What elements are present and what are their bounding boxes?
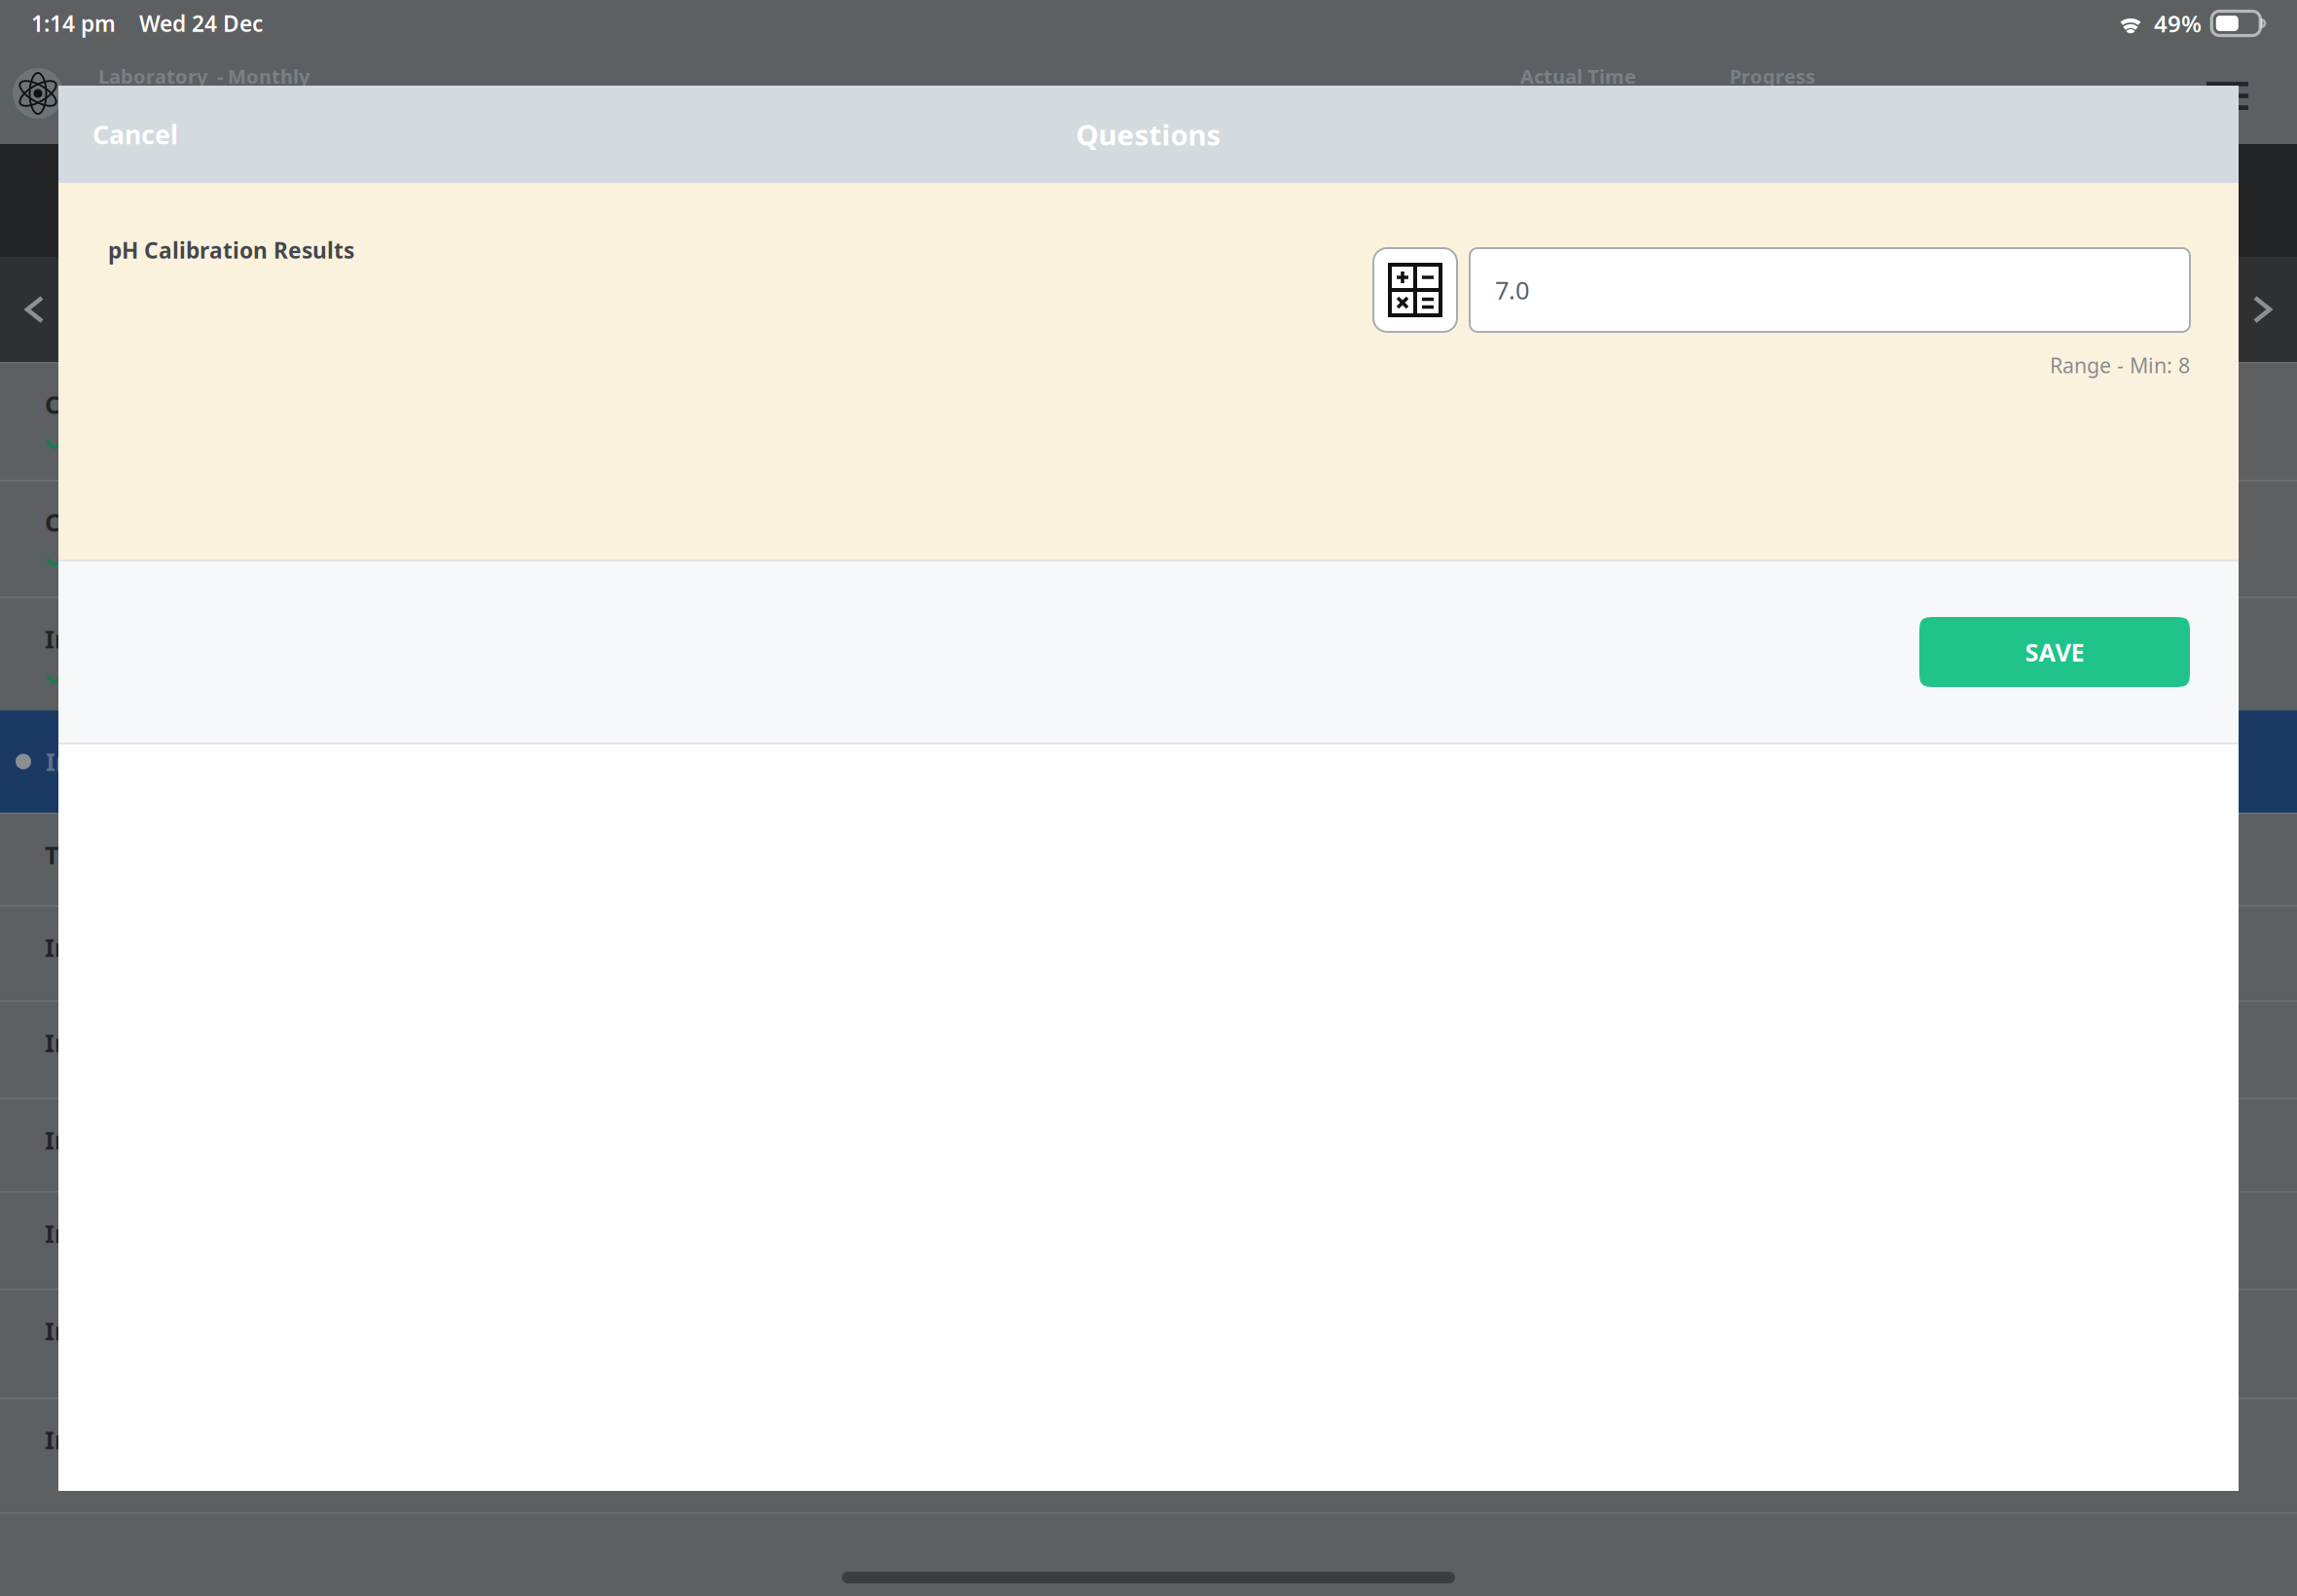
staticText: Inspect safety shower xyxy=(45,1314,315,1347)
staticText: Inspect eyewash station xyxy=(45,931,345,964)
button[interactable]: 7.0 xyxy=(1470,248,2190,332)
staticText: Laboratory - Monthly xyxy=(98,63,310,89)
staticText: Questions xyxy=(1076,115,1221,153)
staticText: Inspect fume hood xyxy=(45,622,276,655)
staticText: Range - Min: 8 xyxy=(2050,351,2190,379)
staticText: Check reagent stock xyxy=(45,506,296,538)
staticText: 1:14 pm xyxy=(31,9,116,38)
staticText: Calibrate pH meter xyxy=(45,388,279,421)
staticText: Temperature log xyxy=(45,838,249,871)
staticText: Actual Time xyxy=(1520,63,1636,89)
staticText: Incident review xyxy=(45,1217,237,1250)
staticText: Inventory reconcile xyxy=(45,1423,283,1456)
button[interactable]: SAVE xyxy=(1919,617,2190,687)
staticText: Inventory check xyxy=(45,1026,242,1059)
staticText: Wed 24 Dec xyxy=(139,9,263,38)
button[interactable]: Calculator xyxy=(1373,248,1457,332)
staticText: Instrument log review xyxy=(46,745,321,778)
staticText: 49% xyxy=(2154,8,2202,39)
staticText: Cancel xyxy=(92,117,178,152)
button[interactable]: Cancel xyxy=(58,100,212,169)
staticText: pH Calibration Results xyxy=(108,236,354,265)
staticText: SAVE xyxy=(2025,636,2084,668)
staticText: 7.0 xyxy=(1495,274,1529,306)
staticText: Progress xyxy=(1730,63,1815,89)
staticText: Instrument cleaning xyxy=(45,1124,296,1156)
